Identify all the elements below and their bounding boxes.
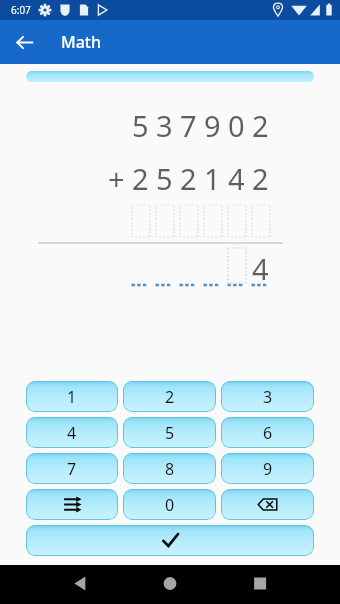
staticText: 3 [156,106,173,144]
button[interactable]: Carry [26,489,118,520]
staticText: 8 [165,458,175,480]
staticText: 2 [252,159,269,197]
staticText: 2 [132,159,149,197]
staticText: 5 [132,106,149,144]
button[interactable]: Backspace [221,489,314,520]
staticText: 5 [165,422,175,444]
staticText: 6:07 [11,3,31,17]
staticText: 7 [67,458,77,480]
staticText: 1 [67,386,77,408]
staticText: 5 [156,159,173,197]
staticText: 7 [180,106,197,144]
staticText: Math [61,31,102,53]
staticText: + [108,159,125,197]
button[interactable]: 7 [26,453,118,484]
button[interactable]: 0 [123,489,216,520]
button[interactable]: 6 [221,417,314,448]
button[interactable]: 1 [26,381,118,412]
button[interactable]: Check answer [26,525,314,556]
button[interactable]: 2 [123,381,216,412]
button[interactable]: 8 [123,453,216,484]
staticText: 4 [67,422,77,444]
button[interactable]: 9 [221,453,314,484]
staticText: 9 [204,106,221,144]
staticText: 2 [165,386,175,408]
button[interactable]: 4 [26,417,118,448]
staticText: 4 [228,159,245,197]
staticText: 6 [263,422,273,444]
button[interactable]: 5 [123,417,216,448]
staticText: 0 [228,106,245,144]
button[interactable]: 3 [221,381,314,412]
staticText: 4 [252,249,269,287]
staticText: 1 [204,159,221,197]
staticText: 2 [180,159,197,197]
staticText: 9 [263,458,273,480]
staticText: 0 [165,494,175,516]
staticText: 2 [252,106,269,144]
button[interactable]: Back [6,24,42,60]
staticText: 3 [263,386,273,408]
